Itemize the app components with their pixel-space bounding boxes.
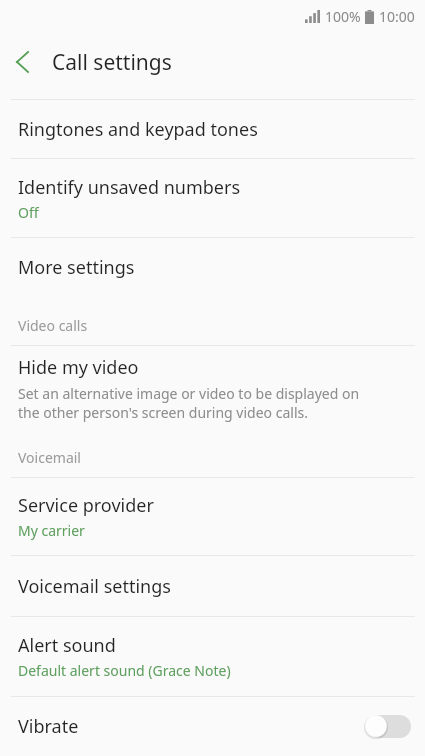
staticText: Video calls — [18, 316, 88, 335]
staticText: Ringtones and keypad tones — [18, 117, 258, 142]
button[interactable]: Alert sound — [0, 617, 425, 696]
staticText: Voicemail — [18, 448, 81, 467]
staticText: Identify unsaved numbers — [18, 175, 241, 200]
staticText: Off — [18, 203, 39, 222]
button[interactable]: More settings — [0, 238, 425, 296]
staticText: Service provider — [18, 493, 154, 518]
button[interactable]: Identify unsaved numbers — [0, 159, 425, 237]
button[interactable]: Ringtones and keypad tones — [0, 100, 425, 158]
staticText: Call settings — [52, 48, 172, 77]
button[interactable]: Back — [0, 40, 44, 84]
staticText: 100% — [325, 7, 361, 26]
staticText: Alert sound — [18, 633, 116, 658]
staticText: 10:00 — [379, 7, 415, 26]
staticText: Default alert sound (Grace Note) — [18, 661, 231, 680]
button[interactable]: Voicemail settings — [0, 556, 425, 616]
staticText: My carrier — [18, 521, 85, 540]
button[interactable]: Vibrate — [0, 697, 425, 755]
button[interactable]: Service provider — [0, 478, 425, 555]
staticText: More settings — [18, 255, 135, 280]
staticText: Voicemail settings — [18, 574, 171, 599]
staticText: Vibrate — [18, 714, 364, 739]
staticText: Hide my video — [18, 355, 139, 380]
staticText: Set an alternative image or video to be … — [18, 384, 360, 422]
button[interactable]: Hide my video — [0, 346, 425, 430]
